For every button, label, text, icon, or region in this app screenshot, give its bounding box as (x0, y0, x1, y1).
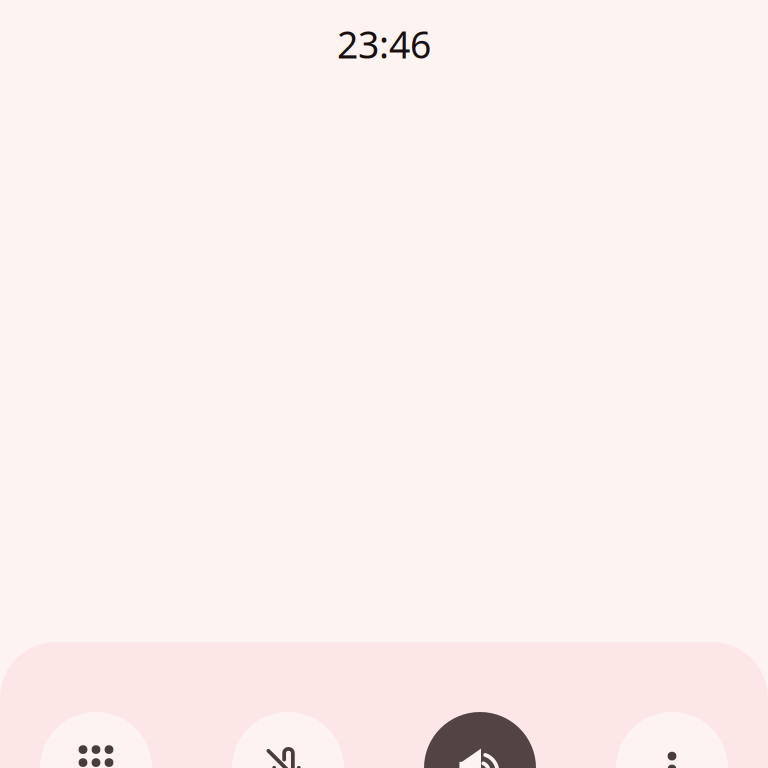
button[interactable]: More (616, 712, 728, 768)
button[interactable]: Speaker (424, 712, 536, 768)
button[interactable]: Keypad (40, 712, 152, 768)
staticText: 23:46 (337, 19, 431, 69)
button[interactable]: Mute (232, 712, 344, 768)
